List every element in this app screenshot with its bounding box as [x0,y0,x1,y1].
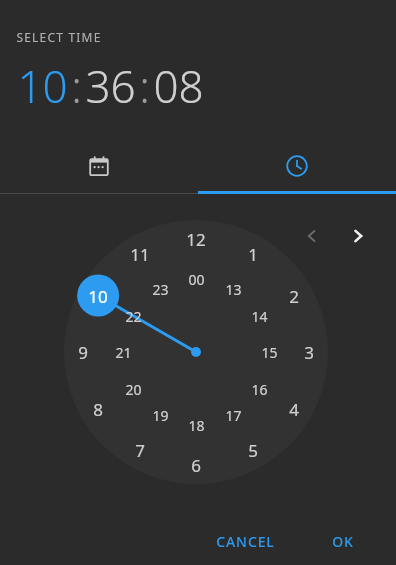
staticText: 1 [248,243,258,266]
staticText: SELECT TIME [16,29,102,45]
staticText: 08 [153,56,204,116]
button[interactable]: Previous [296,220,328,252]
button[interactable]: 00 [179,262,213,296]
staticText: OK [332,532,354,551]
button[interactable]: 9 [66,335,100,369]
button[interactable]: 20 [116,372,150,406]
button[interactable]: 11 [123,237,157,271]
staticText: 12 [186,228,206,251]
staticText: 10 [88,285,108,308]
staticText: 22 [125,307,142,326]
staticText: 6 [191,454,201,477]
staticText: 15 [261,343,278,362]
staticText: 19 [152,406,169,425]
staticText: 16 [251,380,268,399]
button[interactable]: 13 [216,272,250,306]
button[interactable]: 21 [106,335,140,369]
staticText: : [139,56,150,116]
button[interactable]: 12 [179,222,213,256]
button[interactable]: 18 [179,408,213,442]
staticText: 14 [251,307,268,326]
button[interactable]: 14 [242,299,276,333]
staticText: 3 [304,341,314,364]
staticText: 11 [130,243,150,266]
staticText: 17 [225,406,242,425]
staticText: 10 [17,56,68,116]
button[interactable]: 2 [277,279,311,313]
button[interactable]: 4 [277,392,311,426]
button[interactable]: 3 [292,335,326,369]
button[interactable]: 08 [152,56,205,116]
button[interactable]: Date tab [0,138,198,194]
button[interactable]: 8 [81,392,115,426]
button[interactable]: Next [342,220,374,252]
staticText: 36 [85,56,136,116]
staticText: 9 [78,341,88,364]
staticText: 5 [248,439,258,462]
staticText: 7 [135,439,145,462]
button[interactable]: 15 [252,335,286,369]
staticText: CANCEL [216,532,275,551]
button[interactable]: 19 [143,398,177,432]
staticText: 13 [225,280,242,299]
staticText: 00 [188,270,205,289]
button[interactable]: 5 [236,433,270,467]
button[interactable]: 17 [216,398,250,432]
button[interactable]: 7 [123,433,157,467]
button[interactable]: 23 [143,272,177,306]
staticText: 4 [289,398,299,421]
staticText: 18 [188,416,205,435]
button[interactable]: OK [322,526,364,557]
staticText: 21 [115,343,132,362]
button[interactable]: CANCEL [206,526,285,557]
button[interactable]: 36 [84,56,137,116]
button[interactable]: 10 [81,279,115,313]
staticText: 2 [289,285,299,308]
button[interactable]: 22 [116,299,150,333]
button[interactable]: 1 [236,237,270,271]
staticText: : [71,56,82,116]
button[interactable]: 16 [242,372,276,406]
button[interactable]: 10 [16,56,69,116]
staticText: 20 [125,380,142,399]
staticText: 8 [93,398,103,421]
button[interactable]: 6 [179,448,213,482]
staticText: 23 [152,280,169,299]
button[interactable]: Time tab [198,138,396,194]
